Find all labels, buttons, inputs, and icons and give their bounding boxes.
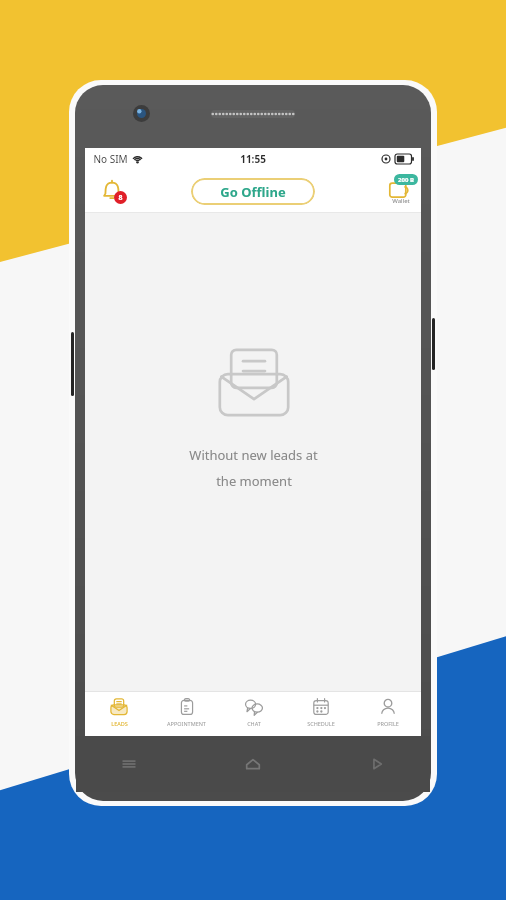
staticText: LEADS xyxy=(111,720,128,727)
staticText: APPOINTMENT xyxy=(167,720,206,727)
button[interactable]: Go Offline xyxy=(191,178,315,205)
staticText: 200 B xyxy=(398,176,414,184)
staticText: SCHEDULE xyxy=(307,720,335,727)
staticText: CHAT xyxy=(247,720,261,727)
button[interactable]: PROFILE xyxy=(354,692,421,736)
staticText: Wallet xyxy=(392,197,410,205)
button[interactable]: Back xyxy=(368,755,386,773)
button[interactable]: CHAT xyxy=(220,692,287,736)
staticText: 8 xyxy=(118,193,123,203)
staticText: Without new leads at xyxy=(189,446,318,464)
staticText: Go Offline xyxy=(220,183,286,201)
staticText: PROFILE xyxy=(377,720,399,727)
staticText: 11:55 xyxy=(240,152,266,166)
button[interactable]: 200 B xyxy=(387,175,415,207)
button[interactable]: Menu xyxy=(120,755,138,773)
button[interactable]: Notifications xyxy=(95,174,129,208)
button[interactable]: Home xyxy=(244,755,262,773)
button[interactable]: LEADS xyxy=(85,692,153,736)
staticText: the moment xyxy=(216,472,292,490)
button[interactable]: SCHEDULE xyxy=(287,692,354,736)
staticText: No SIM xyxy=(93,152,128,166)
button[interactable]: APPOINTMENT xyxy=(153,692,220,736)
